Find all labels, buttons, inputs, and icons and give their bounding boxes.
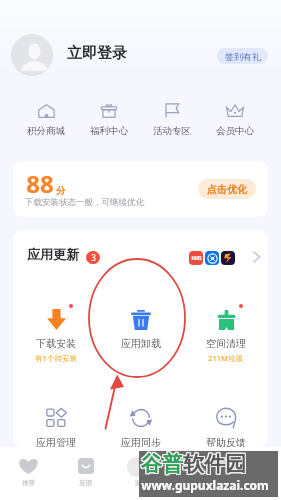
staticText: 立即登录	[67, 44, 127, 63]
button[interactable]: 应用2	[205, 251, 219, 265]
button[interactable]: 下载安装	[13, 309, 98, 363]
button[interactable]: 88	[13, 161, 268, 217]
staticText: 分	[56, 185, 66, 197]
staticText: 应用管理	[36, 436, 76, 447]
staticText: 福利中心	[90, 125, 128, 137]
staticText: 谷普软件园	[140, 452, 245, 478]
button[interactable]: 福利中心	[77, 103, 140, 137]
staticText: 应用	[79, 479, 92, 487]
staticText: 积分商城	[27, 125, 65, 137]
staticText: 游戏	[135, 479, 148, 487]
staticText: 排行	[191, 479, 204, 487]
staticText: 我的	[247, 479, 260, 487]
staticText: 应用卸载	[121, 337, 161, 350]
staticText: 软件园	[183, 451, 246, 477]
button[interactable]: 排行	[169, 458, 225, 487]
staticText: 谷普软件园	[142, 451, 247, 477]
staticText: 谷普	[141, 451, 183, 477]
staticText: 下载安装	[36, 337, 76, 350]
button[interactable]: 应用同步	[98, 408, 183, 447]
staticText: 应用同步	[121, 436, 161, 447]
staticText: 谷普软件园	[140, 450, 245, 476]
staticText: 点击优化	[207, 183, 247, 196]
staticText: 谷普软件园	[141, 452, 246, 478]
staticText: 活动专区	[153, 125, 191, 137]
staticText: 签到有礼	[225, 51, 261, 62]
button[interactable]: 签到有礼	[217, 48, 268, 64]
button[interactable]: 更多	[247, 248, 265, 266]
staticText: 有1个待安装	[35, 353, 77, 363]
button[interactable]: 活动专区	[140, 103, 203, 137]
button[interactable]: 应用1	[189, 251, 203, 265]
button[interactable]: 点击优化	[198, 179, 256, 199]
button[interactable]: 会员中心	[203, 103, 266, 137]
button[interactable]: 头像	[11, 34, 53, 76]
staticText: HMS	[191, 255, 202, 261]
staticText: 谷普软件园	[141, 450, 246, 476]
staticText: 帮助反馈	[206, 436, 246, 447]
staticText: 88	[26, 167, 54, 200]
button[interactable]: 应用卸载	[98, 309, 183, 350]
staticText: 谷普软件园	[142, 450, 247, 476]
button[interactable]: 积分商城	[15, 103, 77, 137]
button[interactable]: 空间清理	[183, 309, 268, 363]
staticText: 谷普软件园	[140, 451, 245, 477]
button[interactable]: 应用	[57, 458, 113, 487]
staticText: www.gupuxlazai.com	[141, 477, 269, 493]
button[interactable]: 应用管理	[13, 408, 98, 447]
staticText: 空间清理	[206, 337, 246, 350]
staticText: 谷普软件园	[142, 452, 247, 478]
staticText: 211M垃圾	[208, 353, 243, 363]
button[interactable]: 我的	[225, 458, 281, 487]
button[interactable]: 推荐	[0, 458, 57, 487]
staticText: 应用更新	[27, 246, 79, 262]
staticText: 3	[91, 252, 96, 263]
button[interactable]: 应用3	[221, 251, 235, 265]
staticText: 推荐	[22, 479, 35, 487]
button[interactable]: 游戏	[113, 458, 169, 487]
staticText: 下载安装状态一般，可继续优化	[25, 197, 144, 208]
button[interactable]: 帮助反馈	[183, 408, 268, 447]
staticText: 会员中心	[216, 125, 254, 137]
